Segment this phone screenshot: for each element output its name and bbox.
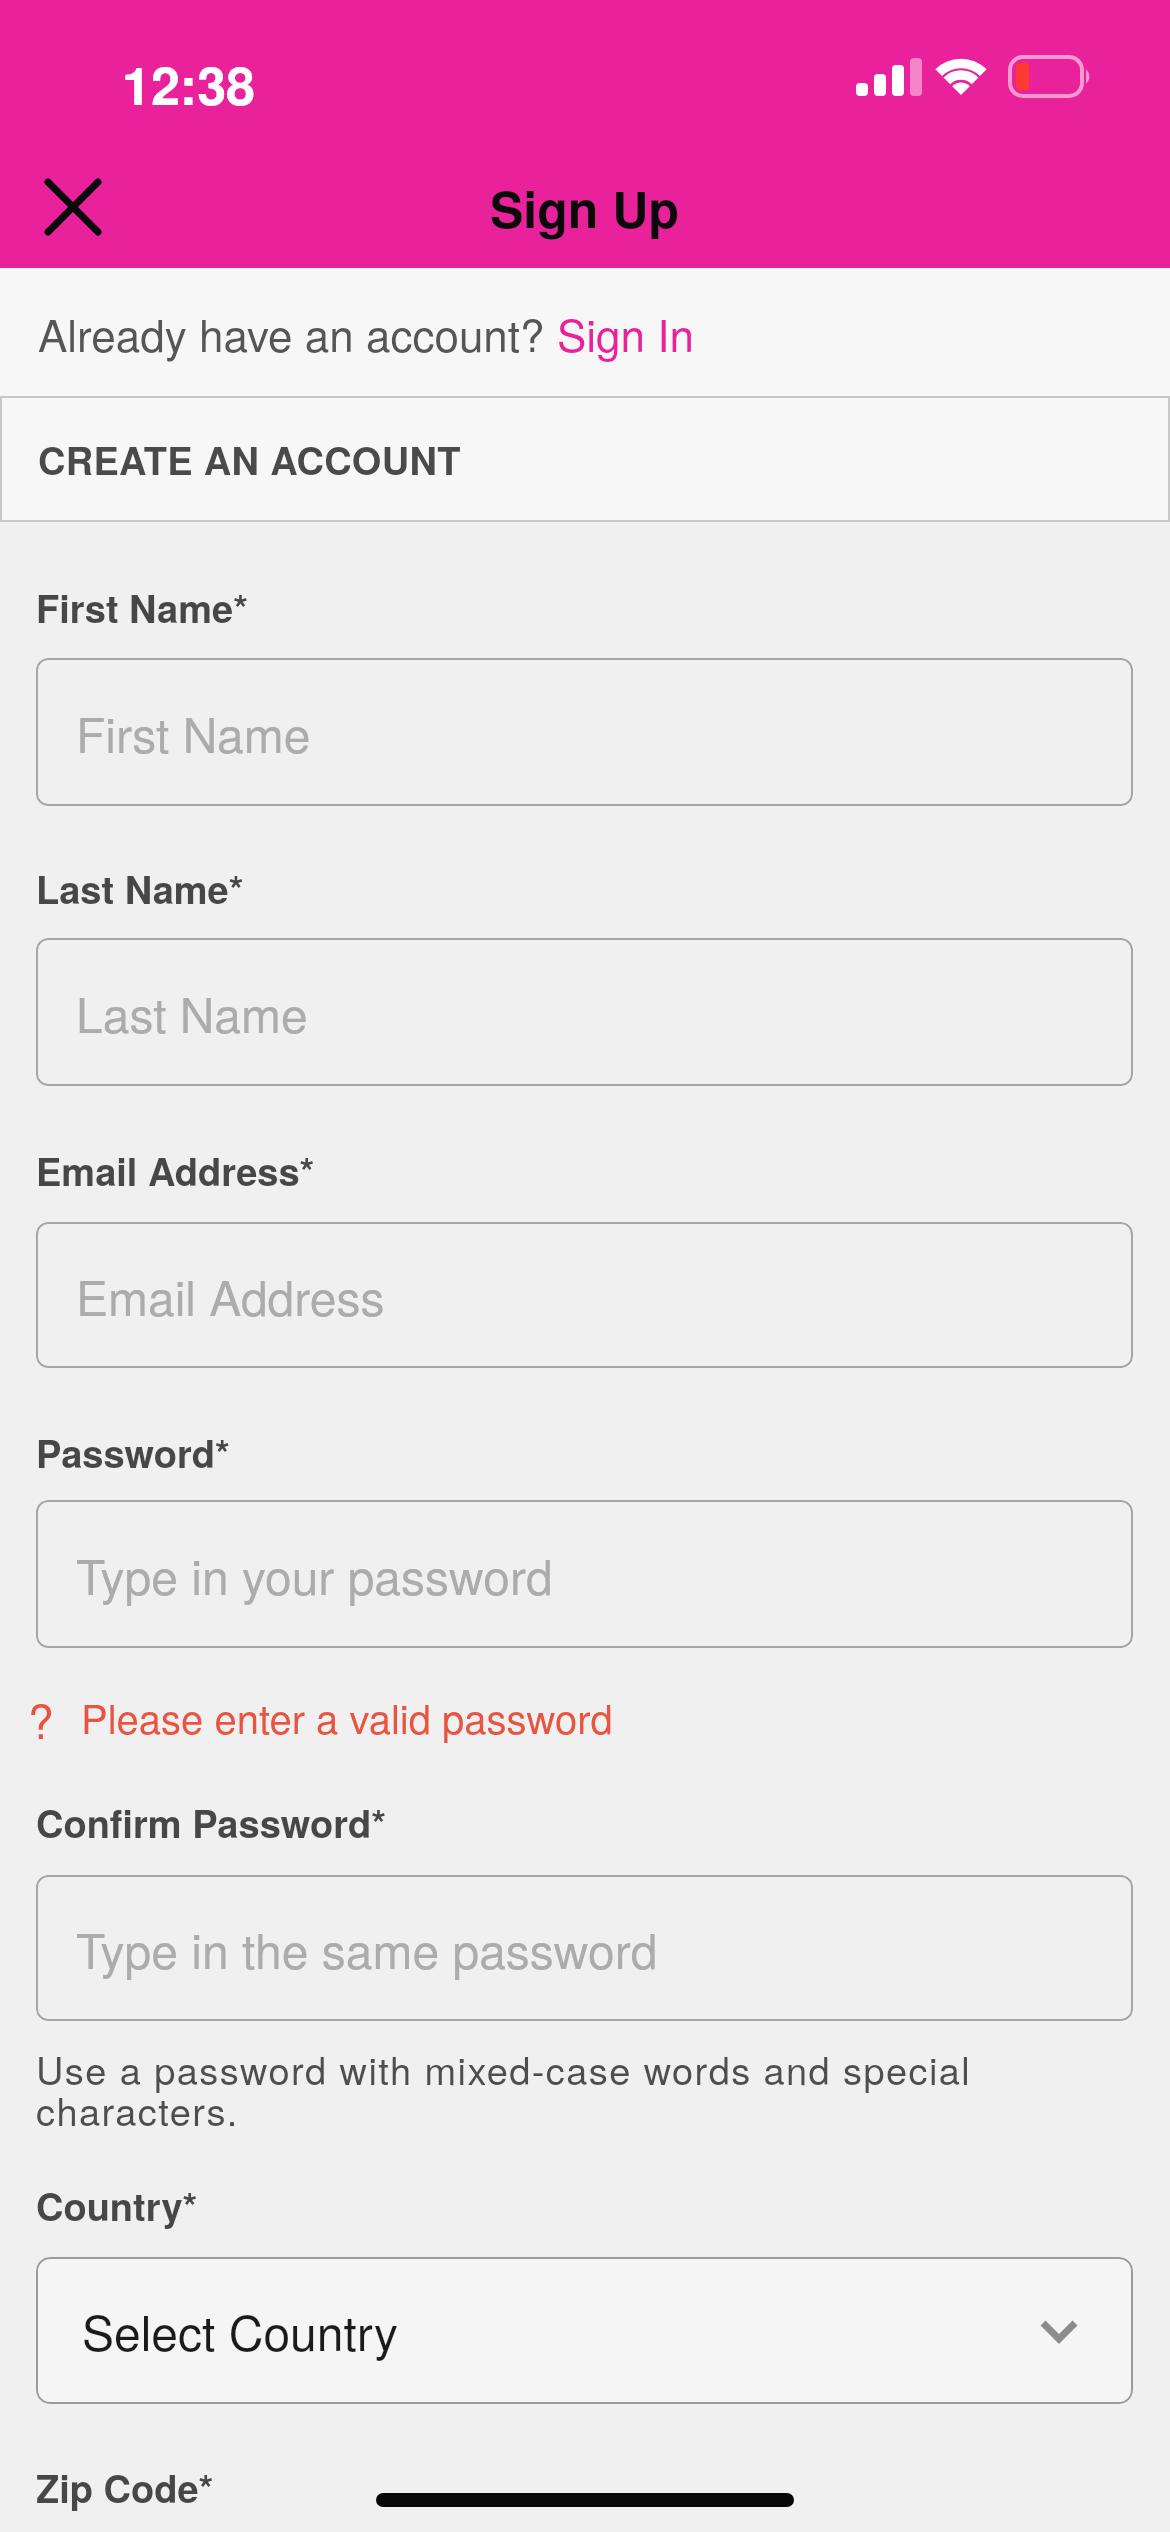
staticText: CREATE AN ACCOUNT: [38, 432, 461, 486]
staticText: Please enter a valid password: [81, 1688, 613, 1745]
button[interactable]: Select Country: [36, 2257, 1133, 2404]
staticText: Already have an account?: [38, 301, 557, 364]
staticText: Use a password with mixed-case words and…: [36, 2041, 972, 2137]
staticText: Zip Code*: [36, 2460, 214, 2514]
button[interactable]: Last Name: [36, 938, 1133, 1086]
staticText: Country*: [36, 2178, 198, 2232]
staticText: Sign Up: [490, 172, 680, 240]
button[interactable]: CREATE AN ACCOUNT: [0, 396, 1170, 522]
button[interactable]: [33, 167, 113, 247]
button[interactable]: Type in your password: [36, 1500, 1133, 1648]
staticText: Select Country: [82, 2296, 398, 2365]
staticText: Type in the same password: [76, 1914, 658, 1983]
staticText: Confirm Password*: [36, 1795, 386, 1849]
button[interactable]: Sign In: [557, 301, 694, 364]
staticText: ?: [28, 1686, 54, 1746]
staticText: First Name*: [36, 580, 248, 634]
button[interactable]: First Name: [36, 658, 1133, 806]
staticText: Last Name: [76, 978, 308, 1047]
staticText: Type in your password: [76, 1540, 553, 1609]
staticText: Email Address: [76, 1261, 385, 1330]
staticText: Email Address*: [36, 1143, 315, 1197]
button[interactable]: Type in the same password: [36, 1875, 1133, 2021]
staticText: Password*: [36, 1425, 230, 1479]
staticText: First Name: [76, 698, 311, 767]
button[interactable]: Email Address: [36, 1222, 1133, 1368]
staticText: 12:38: [122, 46, 255, 110]
staticText: Sign In: [557, 301, 694, 364]
staticText: Last Name*: [36, 861, 244, 915]
